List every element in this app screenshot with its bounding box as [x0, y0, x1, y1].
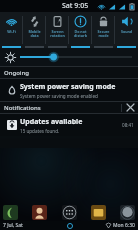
button[interactable]: Home: [65, 221, 74, 230]
button[interactable]: Clear all notifications: [122, 102, 138, 113]
staticText: Secure mode: [92, 29, 115, 38]
staticText: Mon 6:30: [113, 222, 135, 229]
button[interactable]: Do not disturb: [69, 12, 92, 48]
staticText: Notifications: [4, 104, 41, 112]
button[interactable]: Mobile data: [23, 12, 46, 48]
staticText: 08:41: [122, 122, 134, 128]
button[interactable]: App: [32, 205, 47, 220]
staticText: Updates available: [20, 117, 83, 127]
button[interactable]: Screen rotation: [46, 12, 69, 48]
staticText: Do not disturb: [69, 29, 92, 38]
staticText: System power saving mode enabled: [20, 93, 98, 99]
button[interactable]: Sound: [115, 12, 138, 48]
button[interactable]: Secure mode: [92, 12, 115, 48]
staticText: 7 Jul, Sat: [3, 222, 23, 229]
button[interactable]: Updates available: [0, 114, 138, 136]
staticText: Mobile data: [23, 29, 46, 38]
button[interactable]: App: [120, 205, 135, 220]
staticText: Sat 9:05: [62, 1, 89, 11]
button[interactable]: Wi-Fi: [0, 12, 23, 48]
staticText: System power saving mode: [20, 82, 116, 92]
button[interactable]: System power saving mode: [0, 79, 138, 101]
staticText: 15 updates found.: [20, 128, 60, 134]
button[interactable]: App: [62, 205, 77, 220]
staticText: Wi-Fi: [0, 29, 23, 34]
button[interactable]: App: [3, 205, 18, 220]
staticText: Sound: [115, 29, 138, 34]
staticText: Screen rotation: [46, 29, 69, 38]
button[interactable]: Brightness: [0, 48, 138, 66]
button[interactable]: App: [91, 205, 106, 220]
staticText: Ongoing: [4, 69, 29, 77]
